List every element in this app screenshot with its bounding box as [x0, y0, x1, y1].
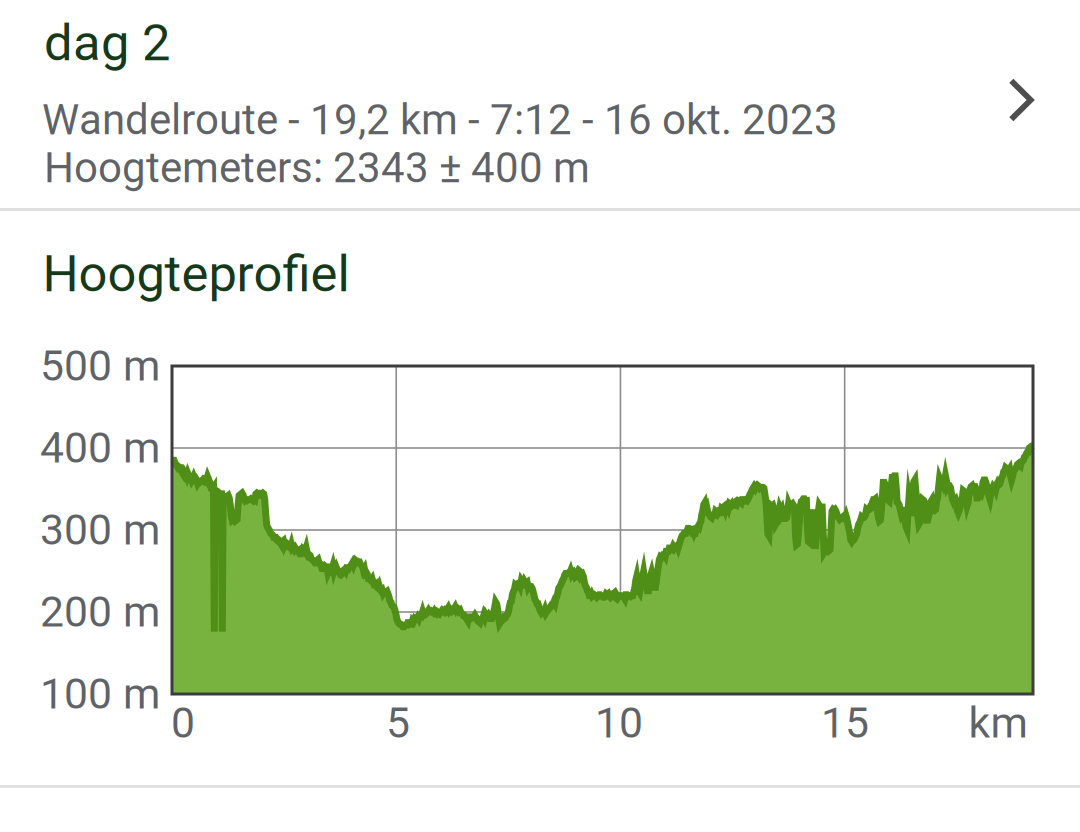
staticText: km — [968, 698, 1027, 748]
staticText: 500 m — [40, 341, 160, 391]
staticText: 300 m — [40, 505, 160, 555]
button[interactable]: dag 2 — [0, 0, 1080, 207]
staticText: Hoogtemeters: 2343 ± 400 m — [44, 143, 590, 193]
staticText: 400 m — [40, 423, 160, 473]
staticText: dag 2 — [44, 13, 170, 73]
staticText: Hoogteprofiel — [42, 244, 349, 304]
staticText: 10 — [595, 698, 643, 748]
staticText: 200 m — [40, 587, 160, 637]
staticText: 5 — [386, 698, 410, 748]
staticText: 0 — [171, 698, 195, 748]
staticText: Wandelroute - 19,2 km - 7:12 - 16 okt. 2… — [42, 95, 838, 145]
staticText: 100 m — [40, 669, 160, 719]
staticText: 15 — [821, 698, 869, 748]
